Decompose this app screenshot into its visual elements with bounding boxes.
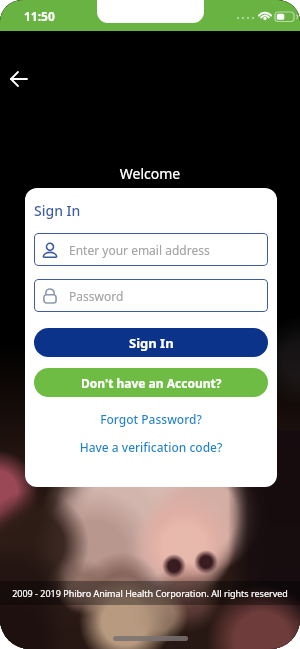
button[interactable]: Password <box>34 279 268 312</box>
staticText: Sign In <box>34 201 81 220</box>
staticText: Welcome <box>0 164 300 183</box>
staticText: Don't have an Account? <box>81 375 222 391</box>
button[interactable]: Enter your email address <box>34 233 268 266</box>
button[interactable] <box>8 68 30 90</box>
button[interactable]: Forgot Password? <box>25 411 277 427</box>
staticText: Sign In <box>129 334 174 352</box>
button[interactable]: Don't have an Account? <box>34 368 268 397</box>
staticText: Enter your email address <box>69 242 210 258</box>
staticText: Password <box>69 288 124 304</box>
button[interactable]: Sign In <box>34 328 268 357</box>
staticText: 11:50 <box>24 8 55 24</box>
staticText: 2009 - 2019 Phibro Animal Health Corpora… <box>12 587 288 599</box>
button[interactable]: Have a verification code? <box>25 439 277 455</box>
